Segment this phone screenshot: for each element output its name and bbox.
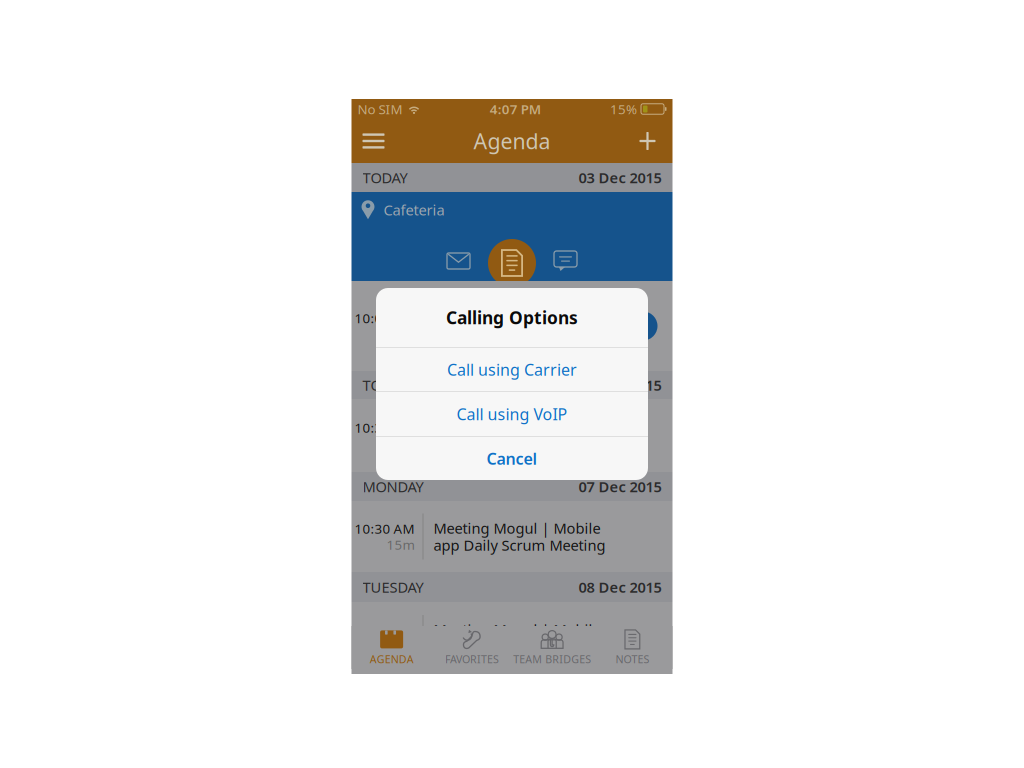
- staticText: 15m: [386, 637, 414, 655]
- button[interactable]: 10:30 AM: [351, 399, 672, 472]
- button[interactable]: Cancel: [376, 437, 648, 480]
- button[interactable]: Call using VoIP: [376, 392, 648, 436]
- staticText: 15%: [610, 100, 637, 118]
- staticText: Meeting Mogul | Mobile: [433, 308, 600, 327]
- button[interactable]: Chat: [543, 241, 587, 281]
- button[interactable]: NOTES: [592, 626, 672, 669]
- button[interactable]: Call using Carrier: [376, 348, 648, 391]
- staticText: 10:30 AM: [354, 520, 414, 537]
- staticText: Cafeteria: [383, 200, 444, 219]
- staticText: 15m: [386, 435, 414, 452]
- staticText: Meeting Mogul | Mobile: [433, 620, 600, 639]
- staticText: 10:30 AM: [354, 621, 414, 639]
- button[interactable]: Meeting notes: [488, 239, 536, 287]
- staticText: Cancel: [486, 448, 537, 469]
- staticText: app Daily Scrum Meeting: [433, 325, 605, 344]
- staticText: TODAY: [362, 168, 407, 187]
- staticText: Calling Options: [446, 306, 578, 329]
- staticText: Call using VoIP: [456, 403, 567, 425]
- staticText: app Daily Scrum Meeting: [433, 434, 605, 454]
- button[interactable]: FAVORITES: [432, 626, 512, 669]
- staticText: AGENDA: [370, 652, 414, 666]
- staticText: 03 Dec 2015: [578, 168, 661, 187]
- button[interactable]: Menu: [352, 119, 394, 163]
- staticText: NOTES: [615, 652, 649, 666]
- staticText: 4:07 PM: [490, 100, 541, 118]
- staticText: 15m: [386, 536, 414, 553]
- button[interactable]: New event: [625, 119, 669, 163]
- button[interactable]: Email attendees: [436, 241, 480, 281]
- staticText: MONDAY: [362, 477, 423, 496]
- staticText: 10:30 AM: [354, 419, 414, 436]
- staticText: TOMORROW: [362, 375, 448, 395]
- staticText: 07 Dec 2015: [578, 477, 661, 496]
- staticText: Agenda: [473, 127, 550, 155]
- button[interactable]: AGENDA: [351, 626, 432, 669]
- button[interactable]: TEAM BRIDGES: [512, 626, 592, 669]
- staticText: app Daily Scrum Meeting: [433, 637, 605, 656]
- staticText: app Daily Scrum Meeting: [433, 535, 605, 555]
- staticText: 08 Dec 2015: [578, 577, 661, 597]
- button[interactable]: 10:30 AM: [351, 602, 672, 674]
- button[interactable]: 10:00 AM: [351, 281, 672, 371]
- staticText: Meeting Mogul | Mobile: [433, 417, 600, 437]
- button[interactable]: 10:30 AM: [351, 501, 672, 572]
- staticText: Call using Carrier: [447, 359, 577, 380]
- staticText: Meeting Mogul | Mobile: [433, 518, 600, 538]
- staticText: No SIM: [357, 100, 402, 118]
- staticText: TUESDAY: [362, 577, 423, 597]
- staticText: FAVORITES: [445, 652, 499, 666]
- staticText: 04 Dec 2015: [578, 375, 661, 395]
- staticText: TEAM BRIDGES: [513, 652, 591, 666]
- staticText: 10:00 AM: [354, 309, 414, 327]
